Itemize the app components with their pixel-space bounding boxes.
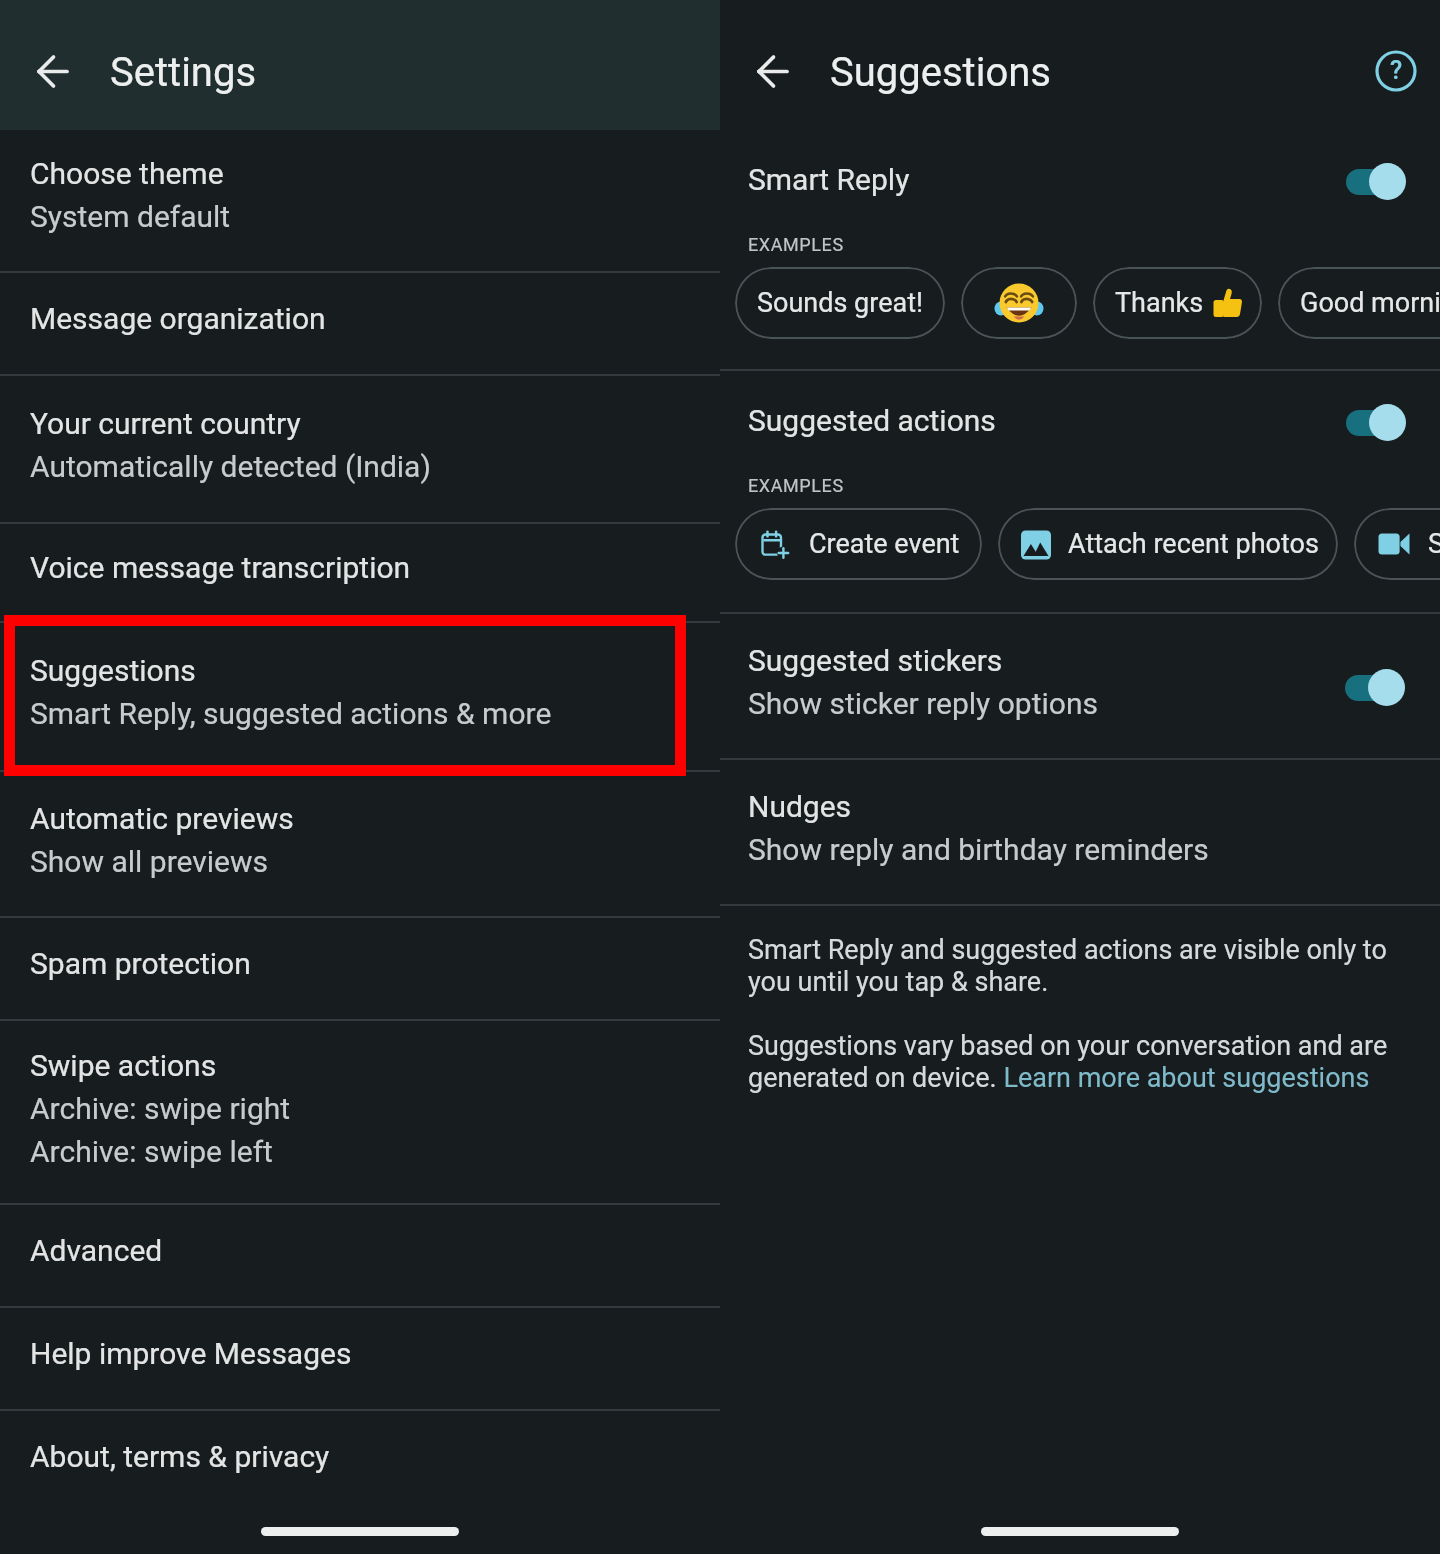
staticText: Voice message transcription	[30, 550, 411, 585]
button[interactable]: Attach recent photos	[998, 508, 1338, 580]
staticText: Create event	[809, 528, 960, 560]
button[interactable]: Swipe actions Archive: swipe right Archi…	[0, 1021, 720, 1203]
button[interactable]: Suggested stickers Show sticker reply op…	[720, 614, 1440, 758]
staticText: Thanks	[1115, 287, 1204, 319]
button[interactable]: Good morning!	[1278, 267, 1440, 339]
button[interactable]: Choose theme System default	[0, 130, 720, 271]
staticText: Suggestions	[830, 49, 1051, 96]
button[interactable]: Help improve Messages	[0, 1308, 720, 1409]
button[interactable]: Your current country Automatically detec…	[0, 376, 720, 522]
staticText: Sounds great!	[757, 287, 923, 319]
staticText: Smart Reply	[748, 162, 910, 197]
staticText: Automatic previews Show all previews	[30, 801, 294, 879]
staticText: Start video call	[1428, 528, 1440, 560]
button[interactable]: Suggestions Smart Reply, suggested actio…	[0, 623, 720, 770]
button[interactable]: Spam protection	[0, 918, 720, 1019]
staticText: Smart Reply and suggested actions are vi…	[748, 934, 1387, 998]
staticText: Your current country Automatically detec…	[30, 406, 431, 484]
staticText: EXAMPLES	[748, 234, 844, 255]
button[interactable]: Voice message transcription	[0, 524, 720, 621]
button[interactable]: Create event	[735, 508, 982, 580]
button[interactable]: Help	[1366, 41, 1426, 101]
staticText: Swipe actions Archive: swipe right Archi…	[30, 1048, 291, 1169]
staticText: Help improve Messages	[30, 1336, 352, 1371]
staticText: Attach recent photos	[1068, 528, 1319, 560]
staticText: Choose theme System default	[30, 156, 231, 234]
button[interactable]: Automatic previews Show all previews	[0, 772, 720, 916]
button[interactable]: Smart Reply	[720, 130, 1440, 224]
button[interactable]: Nudges Show reply and birthday reminders	[720, 760, 1440, 904]
staticText: Suggested actions	[748, 403, 996, 438]
button[interactable]: Sounds great!	[735, 267, 945, 339]
button[interactable]: Thanks	[1093, 267, 1262, 339]
button[interactable]: Suggested actions	[720, 371, 1440, 465]
staticText: ?	[1390, 56, 1403, 85]
staticText: Advanced	[30, 1233, 163, 1268]
staticText: Suggested stickers Show sticker reply op…	[748, 643, 1098, 721]
button[interactable]: Learn more about suggestions	[1000, 1062, 1365, 1094]
staticText: EXAMPLES	[748, 475, 844, 496]
button[interactable]: Advanced	[0, 1205, 720, 1306]
staticText: Spam protection	[30, 946, 251, 981]
button[interactable]: About, terms & privacy	[0, 1411, 720, 1512]
button[interactable]: Back	[742, 41, 802, 101]
button[interactable]	[961, 267, 1077, 339]
button[interactable]: Back	[22, 41, 82, 101]
staticText: Suggestions vary based on your conversat…	[748, 1030, 1388, 1094]
staticText: About, terms & privacy	[30, 1439, 330, 1474]
staticText: Message organization	[30, 301, 326, 336]
button[interactable]: Start video call	[1354, 508, 1440, 580]
staticText: Settings	[110, 49, 257, 96]
button[interactable]: Message organization	[0, 273, 720, 374]
staticText: Nudges Show reply and birthday reminders	[748, 789, 1209, 867]
staticText: Good morning!	[1300, 287, 1440, 319]
staticText: Suggestions Smart Reply, suggested actio…	[30, 653, 552, 731]
